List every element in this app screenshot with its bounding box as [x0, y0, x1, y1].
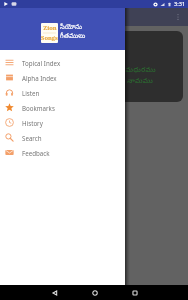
button[interactable]: Recent apps	[127, 285, 142, 300]
button[interactable]: More options	[170, 9, 186, 25]
button[interactable]: Topical Index	[0, 55, 125, 70]
staticText: Listen	[22, 89, 40, 97]
button[interactable]: Listen	[0, 85, 125, 100]
button[interactable]: Feedback	[0, 145, 125, 160]
button[interactable]: ఎంత మధురము	[96, 31, 183, 102]
staticText: Search	[22, 134, 42, 142]
button[interactable]: Bookmarks	[0, 100, 125, 115]
button[interactable]: Alpha Index	[0, 70, 125, 85]
staticText: Songs	[41, 34, 58, 42]
button[interactable]: History	[0, 115, 125, 130]
staticText: ఎంత మధురము	[108, 65, 156, 76]
button[interactable]: Back	[47, 285, 62, 300]
staticText: యేసు నామము	[108, 76, 153, 87]
staticText: Bookmarks	[22, 104, 55, 112]
button[interactable]: Search	[0, 130, 125, 145]
button[interactable]: Home	[87, 285, 102, 300]
staticText: Feedback	[22, 149, 50, 157]
staticText: Zion	[43, 24, 57, 32]
staticText: సీయోను	[60, 23, 82, 32]
staticText: Alpha Index	[22, 74, 57, 82]
staticText: 3:31	[174, 0, 186, 8]
staticText: గీతములు	[60, 32, 86, 41]
staticText: History	[22, 119, 43, 127]
staticText: Topical Index	[22, 59, 61, 67]
